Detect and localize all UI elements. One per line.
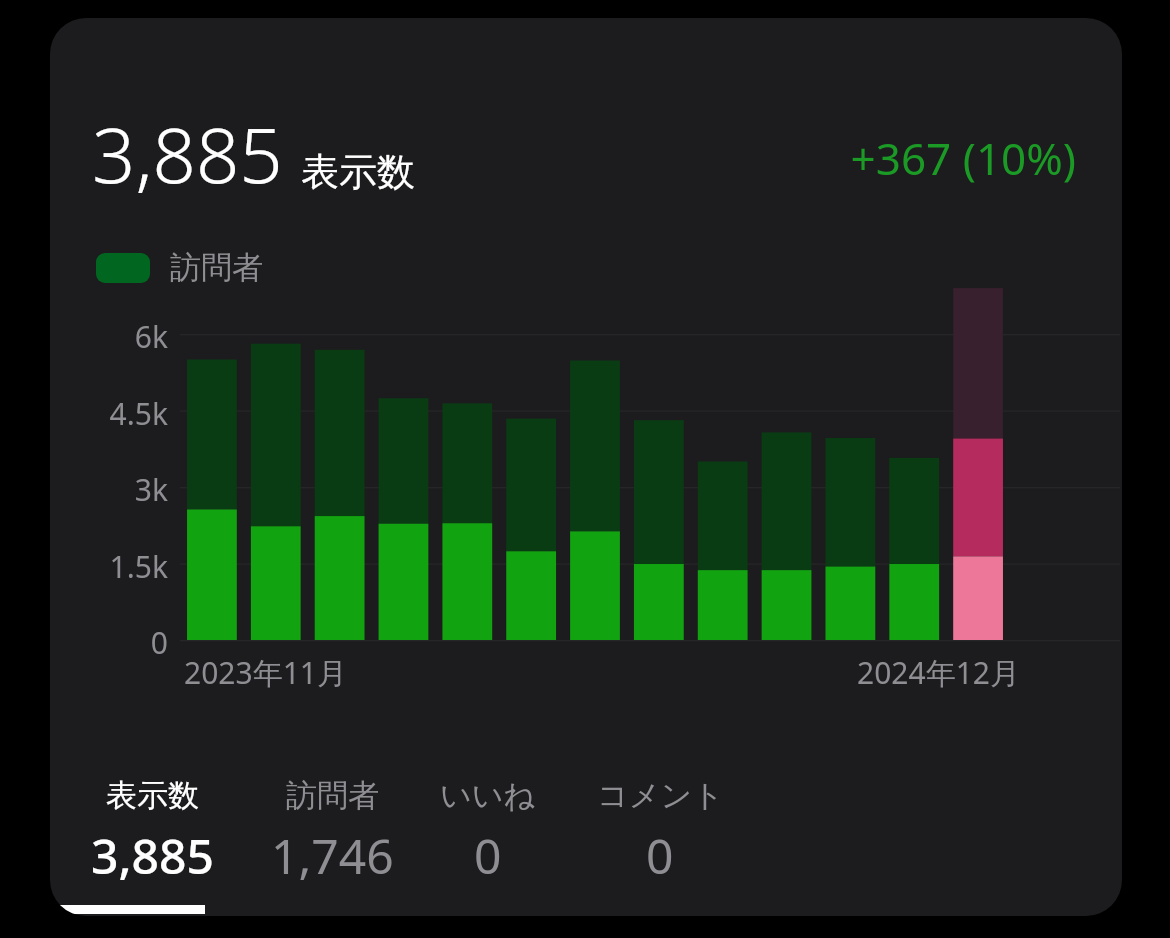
staticText: 2024年12月	[790, 652, 1020, 693]
staticText: 6k	[50, 316, 168, 357]
staticText: 2023年11月	[184, 652, 347, 693]
staticText: 表示数	[301, 148, 415, 196]
staticText: 4.5k	[50, 393, 168, 434]
staticText: 訪問者	[286, 776, 379, 815]
staticText: 3,885	[91, 823, 214, 888]
button[interactable]: コメント	[565, 776, 755, 888]
button[interactable]: 3,885	[50, 18, 1122, 916]
staticText: 0	[474, 823, 502, 888]
staticText: 1,746	[271, 823, 394, 888]
staticText: 1.5k	[50, 546, 168, 587]
staticText: 訪問者	[170, 248, 263, 287]
staticText: いいね	[440, 776, 536, 815]
staticText: 3,885	[92, 102, 283, 206]
staticText: +367 (10%)	[808, 128, 1076, 188]
staticText: 0	[646, 823, 674, 888]
button[interactable]: 表示数	[50, 776, 255, 888]
staticText: 表示数	[106, 776, 199, 815]
staticText: 3k	[50, 469, 168, 510]
button[interactable]: 訪問者	[255, 776, 410, 888]
button[interactable]: いいね	[410, 776, 565, 888]
staticText: 0	[50, 622, 168, 663]
staticText: コメント	[597, 776, 724, 815]
